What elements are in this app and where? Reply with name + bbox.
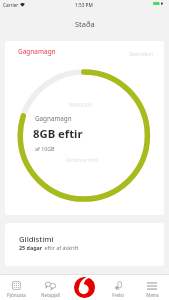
staticText: 5990001 — [69, 101, 93, 109]
staticText: Þjónusta — [7, 292, 26, 298]
staticText: 8GB eftir — [33, 126, 83, 141]
button[interactable]: Meira — [135, 275, 169, 300]
button[interactable]: Símnotkun — [129, 51, 153, 57]
staticText: Staða — [75, 19, 95, 29]
staticText: af 10GB — [35, 145, 55, 152]
staticText: eftir af áskrift — [43, 244, 79, 251]
staticText: Netspjall — [41, 292, 60, 298]
button[interactable]: Gagnamagn — [18, 47, 56, 56]
staticText: Gagnamagn — [35, 114, 72, 123]
staticText: Frelsi — [112, 292, 124, 298]
button[interactable]: Frelsi — [101, 275, 135, 300]
button[interactable]: Netspjall — [33, 275, 67, 300]
staticText: Meira — [146, 292, 159, 298]
button[interactable]: Gildistími — [5, 223, 164, 266]
staticText: Gagnamagn — [18, 47, 56, 56]
staticText: Vodafone frelsi — [66, 157, 98, 163]
staticText: Símnotkun — [129, 51, 153, 57]
staticText: Carrier — [3, 2, 19, 8]
staticText: 25 dagar — [19, 244, 43, 251]
button[interactable]: Þjónusta — [0, 275, 33, 300]
staticText: 1:53 PM — [75, 2, 93, 8]
staticText: Gildistími — [19, 234, 54, 244]
button[interactable]: Vodafone home — [67, 275, 101, 300]
